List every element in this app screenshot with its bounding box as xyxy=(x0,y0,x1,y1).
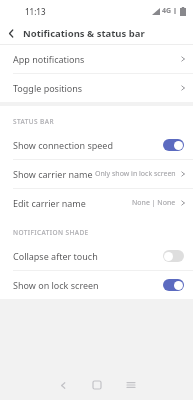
staticText: Notifications & status bar xyxy=(23,27,145,40)
button[interactable]: Show carrier name xyxy=(0,160,193,188)
staticText: 11:13 xyxy=(25,6,46,17)
button[interactable]: Collapse after touch xyxy=(0,242,193,270)
staticText: Show carrier name xyxy=(13,168,93,180)
button[interactable]: Toggle positions xyxy=(0,74,193,102)
staticText: Collapse after touch xyxy=(13,250,98,262)
staticText: None | None xyxy=(132,198,176,208)
staticText: Show connection speed xyxy=(13,139,113,151)
staticText: 4G xyxy=(162,6,172,16)
staticText: STATUS BAR xyxy=(13,117,54,126)
button[interactable]: Show on lock screen xyxy=(0,271,193,299)
button[interactable]: Back xyxy=(0,22,23,45)
staticText: Only show in lock screen xyxy=(95,169,176,179)
button[interactable]: App notifications xyxy=(0,45,193,73)
staticText: Toggle positions xyxy=(13,82,83,94)
button[interactable]: Home xyxy=(80,370,114,400)
button[interactable]: Show connection speed xyxy=(0,131,193,159)
staticText: App notifications xyxy=(13,53,85,65)
staticText: Show on lock screen xyxy=(13,279,99,291)
button[interactable]: Back xyxy=(46,370,80,400)
staticText: Edit carrier name xyxy=(13,197,86,209)
button[interactable]: Edit carrier name xyxy=(0,189,193,217)
button[interactable]: Recent apps xyxy=(114,370,148,400)
staticText: NOTIFICATION SHADE xyxy=(13,228,89,237)
